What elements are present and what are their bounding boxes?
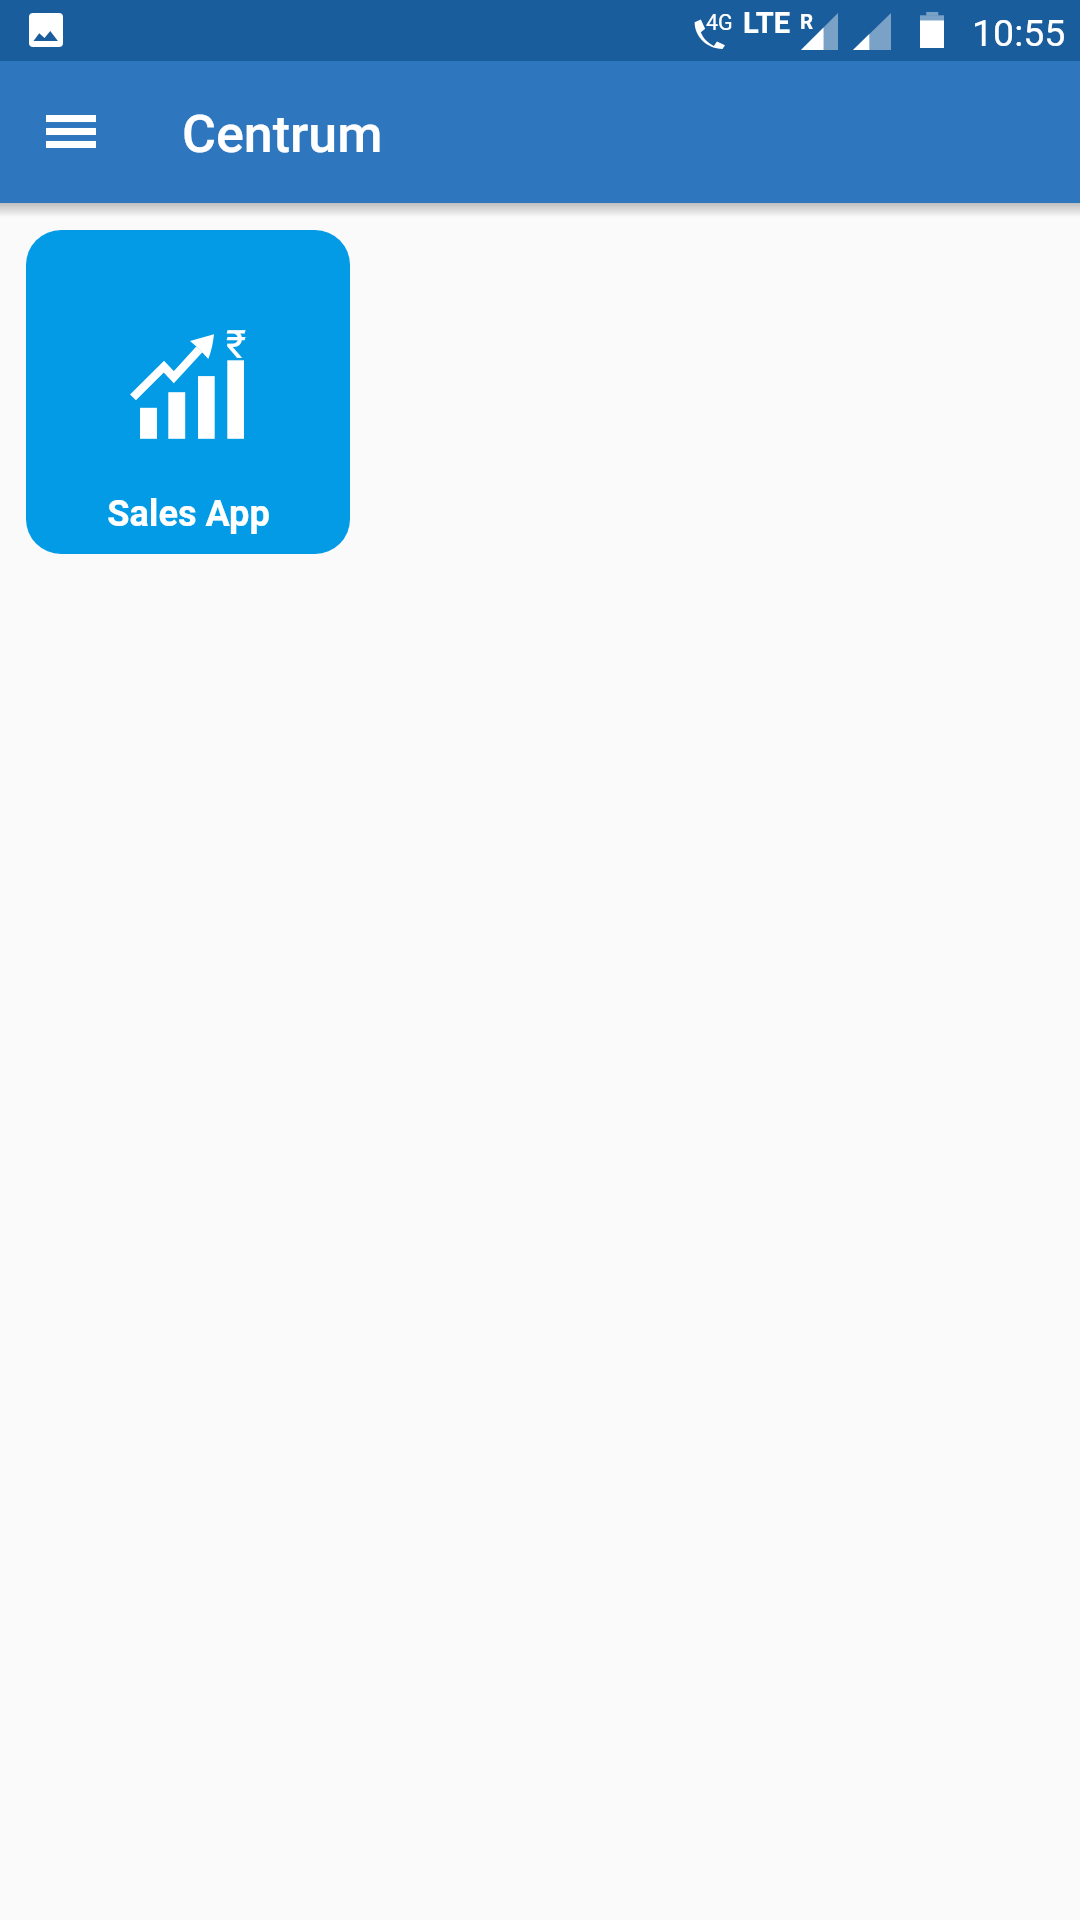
staticText: ₹ [226, 322, 247, 368]
staticText: R [800, 10, 814, 34]
button[interactable]: ₹ [26, 230, 350, 554]
staticText: Sales App [107, 492, 270, 534]
staticText: 10:55 [972, 11, 1066, 55]
staticText: 4G [706, 10, 733, 35]
other: Screenshot captured [29, 13, 63, 47]
staticText: LTE [743, 6, 791, 40]
button[interactable]: Open navigation menu [20, 80, 122, 182]
staticText: Centrum [182, 104, 383, 165]
